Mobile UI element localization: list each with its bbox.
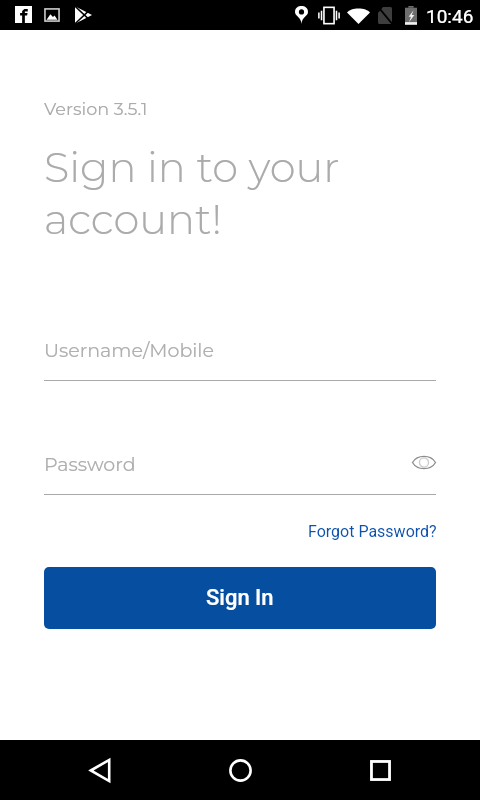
staticText: Password xyxy=(44,453,136,476)
button[interactable]: Home xyxy=(206,746,274,794)
button[interactable]: Forgot Password? xyxy=(308,522,437,541)
staticText: 10:46 xyxy=(426,5,474,27)
button[interactable]: Back xyxy=(66,746,134,794)
staticText: Version 3.5.1 xyxy=(44,98,148,119)
staticText: Sign In xyxy=(206,585,274,611)
button[interactable]: Recent apps xyxy=(346,746,414,794)
staticText: Sign in to your account! xyxy=(44,142,374,245)
staticText: Username/Mobile xyxy=(44,339,214,362)
button[interactable]: Sign In xyxy=(44,567,436,629)
button[interactable]: Show password xyxy=(404,442,444,482)
